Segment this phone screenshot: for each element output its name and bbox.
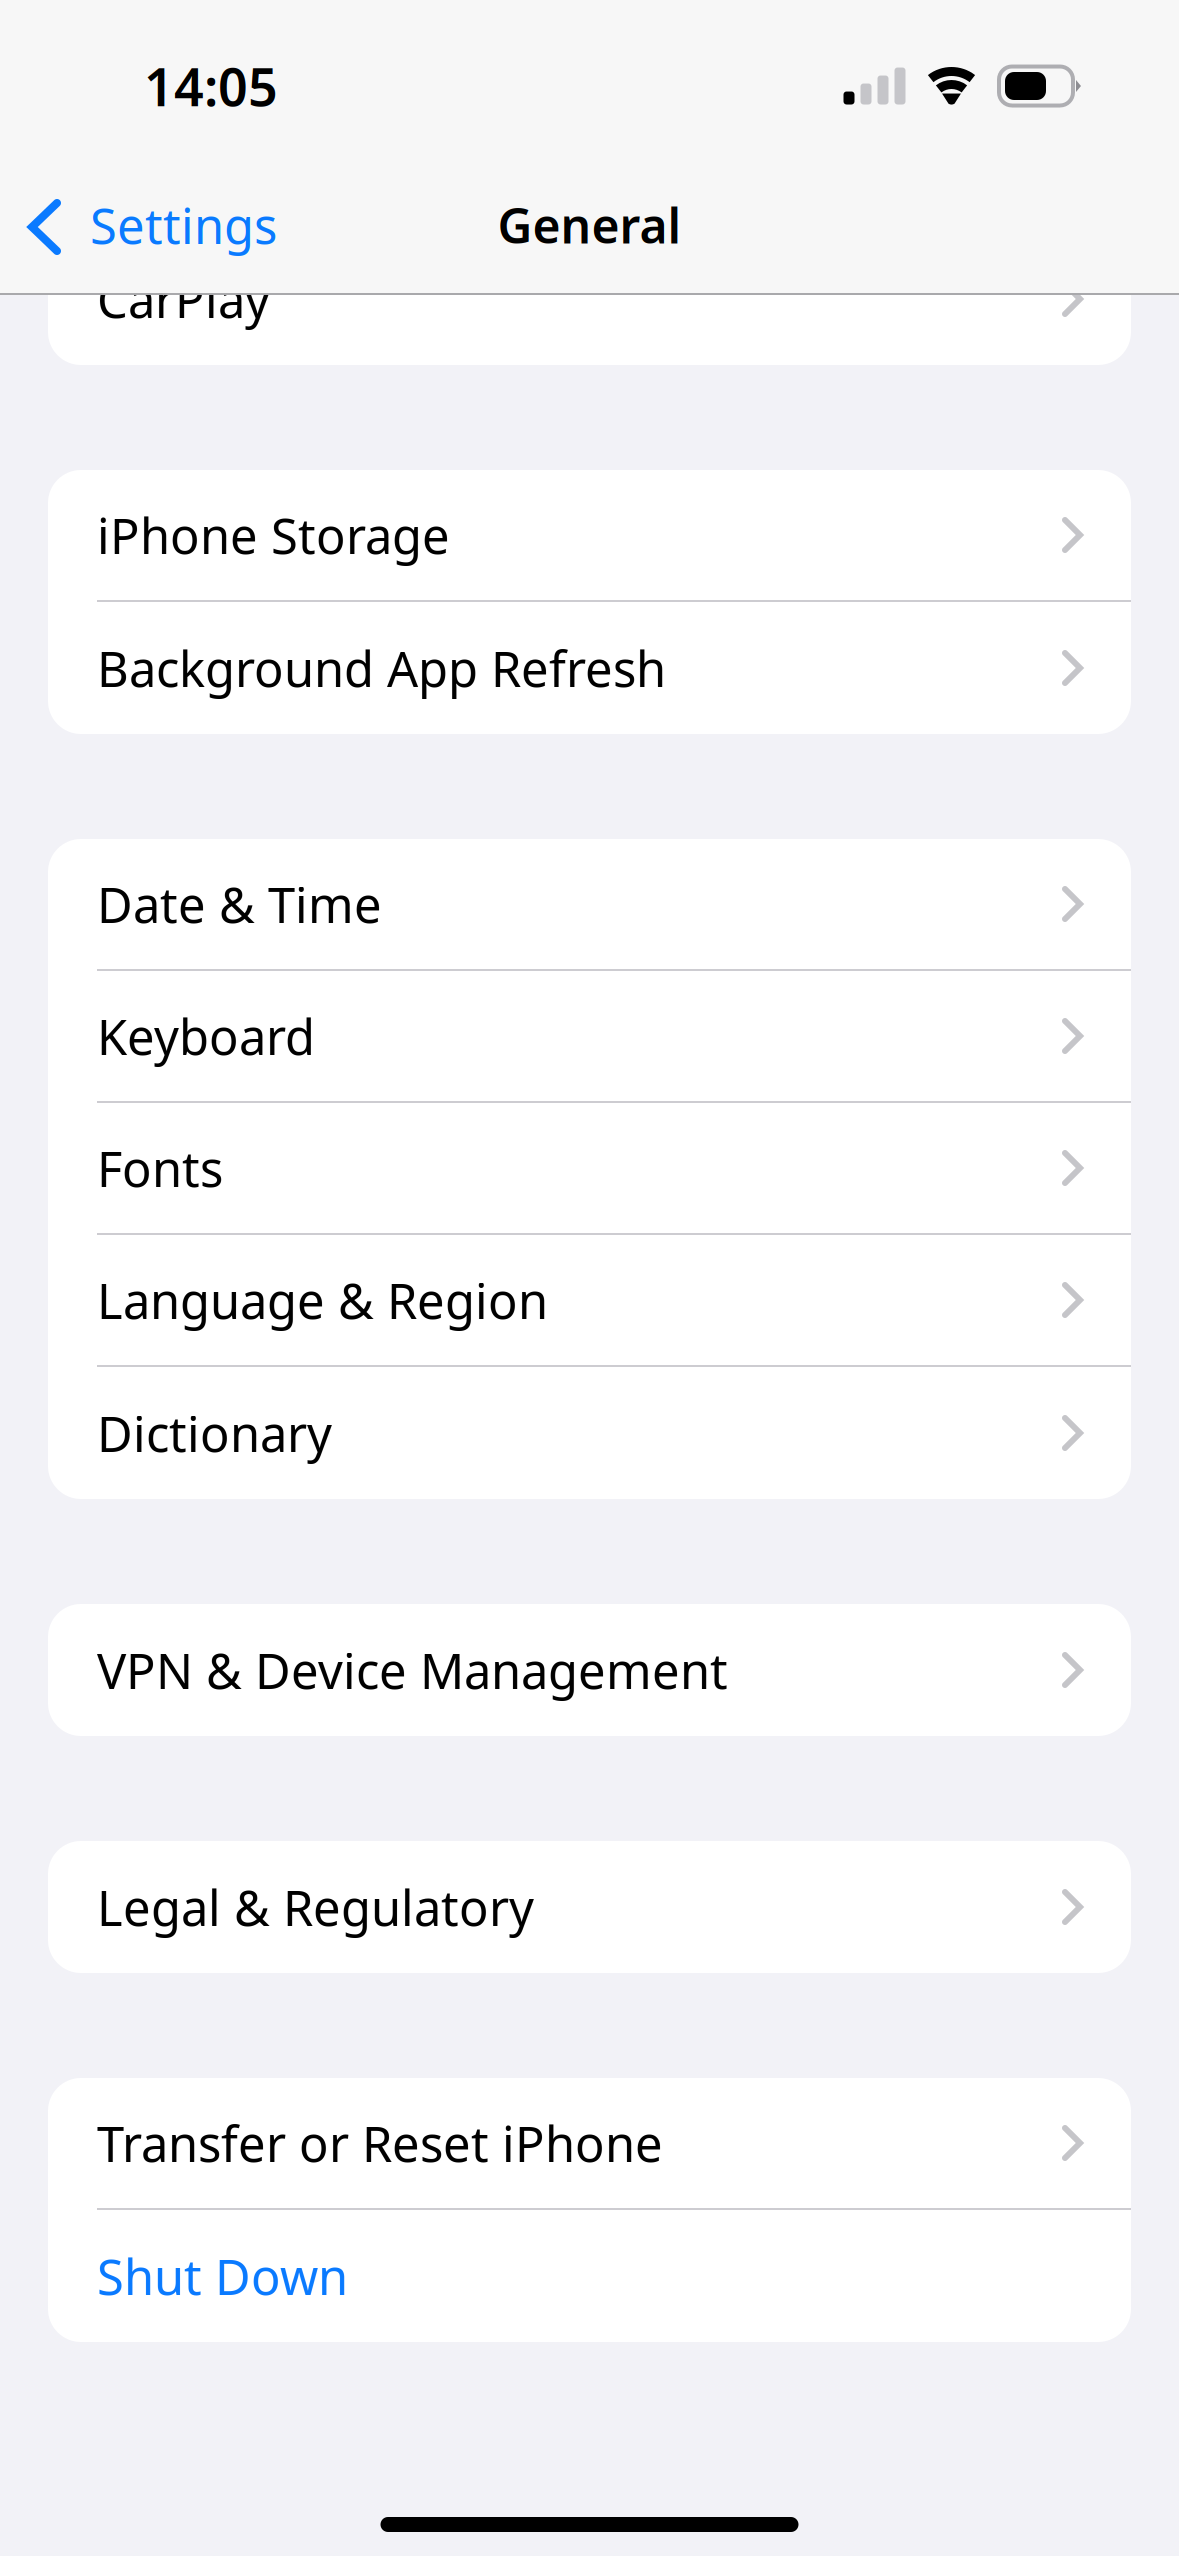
staticText: VPN & Device Management bbox=[97, 1637, 728, 1703]
button[interactable]: VPN & Device Management bbox=[48, 1604, 1131, 1736]
staticText: 14:05 bbox=[144, 51, 278, 121]
staticText: Shut Down bbox=[97, 2243, 348, 2309]
button[interactable]: Language & Region bbox=[48, 1235, 1131, 1365]
staticText: Background App Refresh bbox=[97, 635, 666, 701]
button[interactable]: Shut Down bbox=[48, 2210, 1131, 2342]
staticText: Date & Time bbox=[97, 871, 382, 937]
button[interactable]: Date & Time bbox=[48, 839, 1131, 969]
staticText: Dictionary bbox=[97, 1400, 332, 1466]
staticText: CarPlay bbox=[97, 266, 270, 332]
button[interactable]: Legal & Regulatory bbox=[48, 1841, 1131, 1973]
button[interactable]: Fonts bbox=[48, 1103, 1131, 1233]
button[interactable]: Keyboard bbox=[48, 971, 1131, 1101]
staticText: Transfer or Reset iPhone bbox=[97, 2110, 663, 2176]
button[interactable]: Background App Refresh bbox=[48, 602, 1131, 734]
staticText: iPhone Storage bbox=[97, 502, 450, 568]
staticText: Settings bbox=[90, 192, 277, 258]
staticText: Language & Region bbox=[97, 1267, 548, 1333]
button[interactable]: CarPlay bbox=[48, 233, 1131, 365]
button[interactable]: iPhone Storage bbox=[48, 470, 1131, 600]
button[interactable]: Settings bbox=[0, 159, 301, 291]
staticText: Fonts bbox=[97, 1135, 223, 1201]
staticText: General bbox=[497, 193, 681, 257]
staticText: Legal & Regulatory bbox=[97, 1874, 534, 1940]
staticText: Keyboard bbox=[97, 1003, 315, 1069]
button[interactable]: Transfer or Reset iPhone bbox=[48, 2078, 1131, 2208]
button[interactable]: Dictionary bbox=[48, 1367, 1131, 1499]
